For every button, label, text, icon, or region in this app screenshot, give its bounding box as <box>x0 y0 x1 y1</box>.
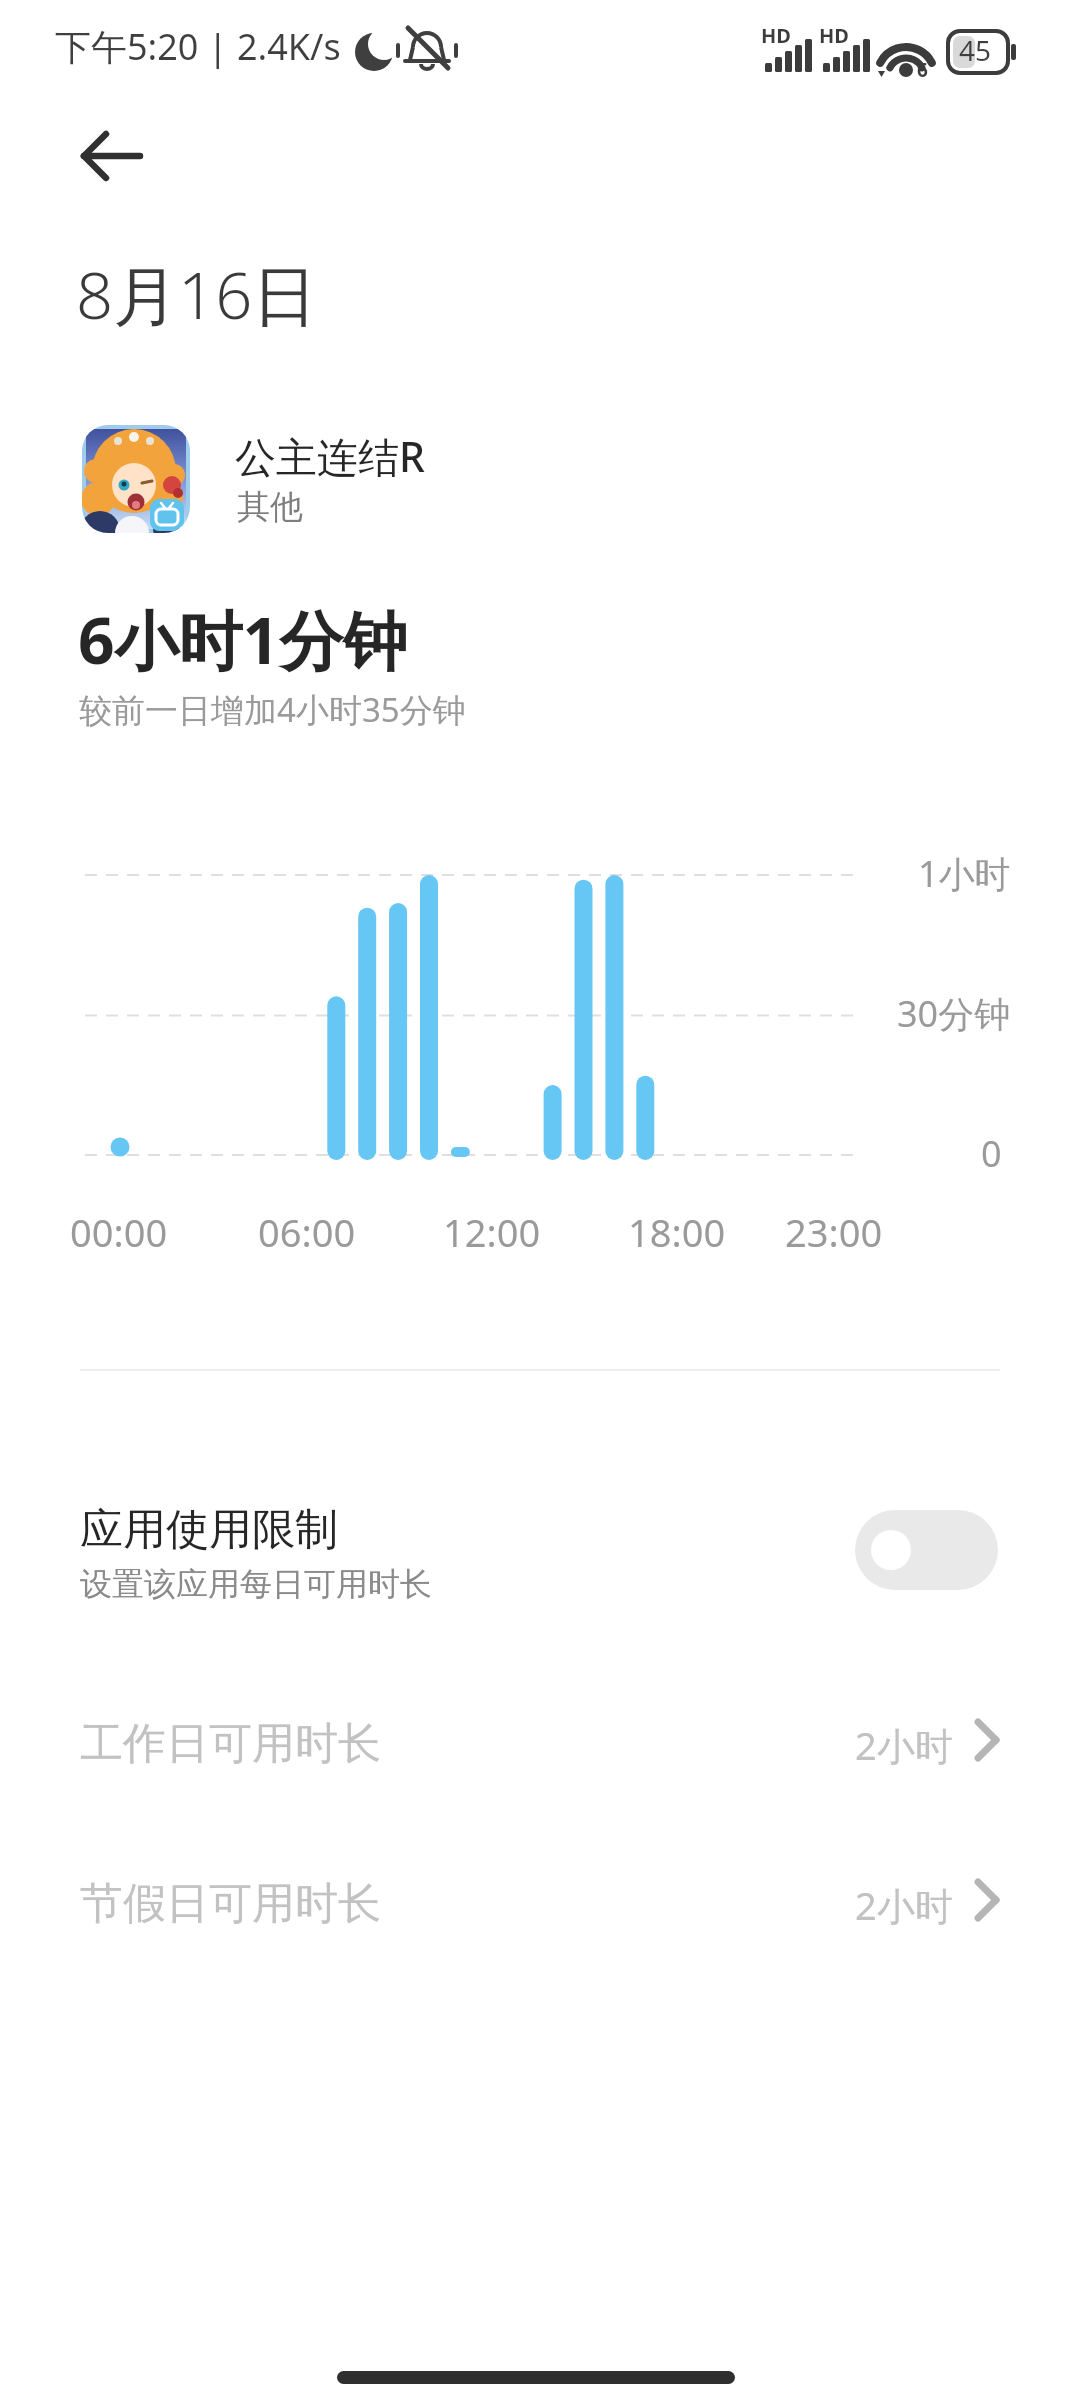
staticText: 2小时 <box>855 1879 953 1931</box>
staticText: 下午5:20 | 2.4K/s <box>55 22 341 71</box>
staticText: 00:00 <box>70 1206 168 1258</box>
staticText: 其他 <box>237 486 303 528</box>
staticText: 30分钟 <box>897 989 1011 1038</box>
staticText: 6小时1分钟 <box>78 596 408 683</box>
staticText: 6 <box>917 57 928 83</box>
staticText: 8月16日 <box>76 250 318 339</box>
staticText: 12:00 <box>443 1206 541 1258</box>
staticText: HD <box>819 22 849 49</box>
staticText: 较前一日增加4小时35分钟 <box>79 687 466 732</box>
staticText: HD <box>761 22 791 49</box>
staticText: 2小时 <box>855 1719 953 1771</box>
staticText: 设置该应用每日可用时长 <box>80 1564 432 1604</box>
staticText: 工作日可用时长 <box>80 1717 381 1771</box>
staticText: 应用使用限制 <box>80 1503 338 1557</box>
staticText: 18:00 <box>628 1206 726 1258</box>
button[interactable] <box>66 118 156 194</box>
staticText: 0 <box>981 1129 1002 1178</box>
staticText: 公主连结R <box>235 428 425 484</box>
staticText: 06:00 <box>258 1206 356 1258</box>
staticText: 节假日可用时长 <box>80 1877 381 1931</box>
button[interactable] <box>82 425 190 533</box>
button[interactable]: 应用使用限制 <box>0 1470 1080 1630</box>
staticText: 45 <box>959 31 992 69</box>
staticText: 23:00 <box>785 1206 883 1258</box>
button[interactable]: 节假日可用时长 <box>0 1850 1080 1960</box>
staticText: 1小时 <box>918 849 1011 898</box>
button[interactable]: 工作日可用时长 <box>0 1690 1080 1800</box>
